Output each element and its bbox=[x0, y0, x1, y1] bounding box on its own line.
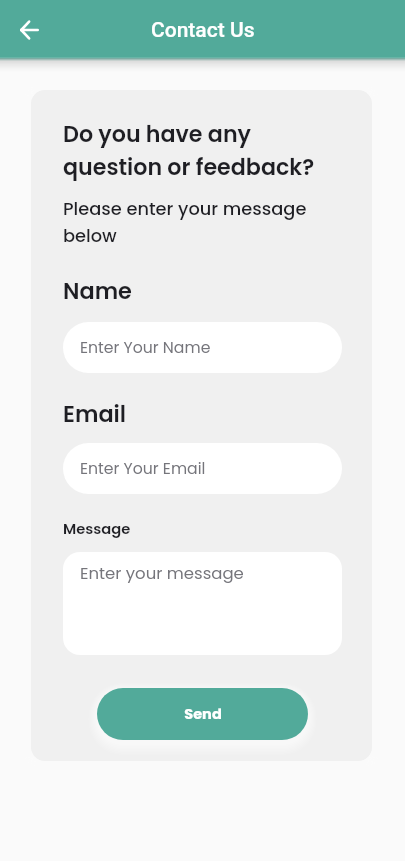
staticText: Enter Your Email bbox=[80, 457, 206, 480]
staticText: Email bbox=[63, 400, 127, 430]
button[interactable]: Enter your message bbox=[63, 552, 342, 655]
button[interactable]: Enter Your Email bbox=[63, 443, 342, 494]
staticText: Enter your message bbox=[80, 562, 244, 585]
button[interactable]: Back bbox=[7, 7, 52, 52]
staticText: Send bbox=[184, 704, 222, 724]
staticText: Do you have any question or feedback? bbox=[63, 118, 315, 184]
staticText: Contact Us bbox=[151, 18, 255, 43]
staticText: Message bbox=[63, 520, 131, 539]
staticText: Please enter your message below bbox=[63, 195, 307, 249]
button[interactable]: Enter Your Name bbox=[63, 322, 342, 373]
button[interactable]: Send bbox=[97, 688, 308, 740]
staticText: Name bbox=[63, 277, 132, 307]
staticText: Enter Your Name bbox=[80, 336, 211, 359]
